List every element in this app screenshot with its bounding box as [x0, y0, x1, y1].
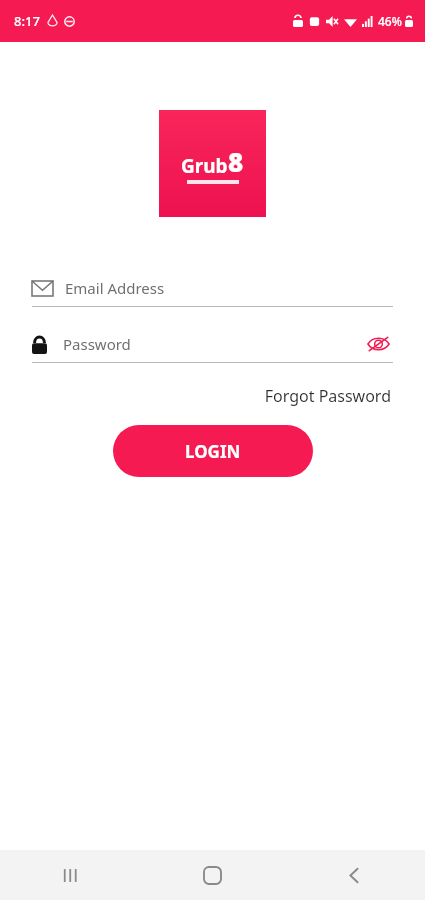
- button[interactable]: Forgot Password: [262, 381, 393, 411]
- button[interactable]: Back: [283, 850, 425, 900]
- button[interactable]: Home: [141, 850, 283, 900]
- button[interactable]: Password: [32, 326, 393, 362]
- staticText: Email Address: [65, 278, 165, 298]
- button[interactable]: Recent apps: [0, 850, 141, 900]
- staticText: Grub: [181, 153, 228, 179]
- staticText: Forgot Password: [264, 385, 391, 407]
- staticText: Password: [63, 334, 131, 354]
- staticText: 46%: [378, 13, 402, 29]
- staticText: 8:17: [14, 12, 40, 30]
- staticText: 8: [228, 144, 244, 179]
- staticText: LOGIN: [185, 440, 241, 463]
- button[interactable]: Email Address: [32, 270, 393, 306]
- button[interactable]: Show password: [363, 329, 393, 359]
- button[interactable]: LOGIN: [113, 425, 313, 477]
